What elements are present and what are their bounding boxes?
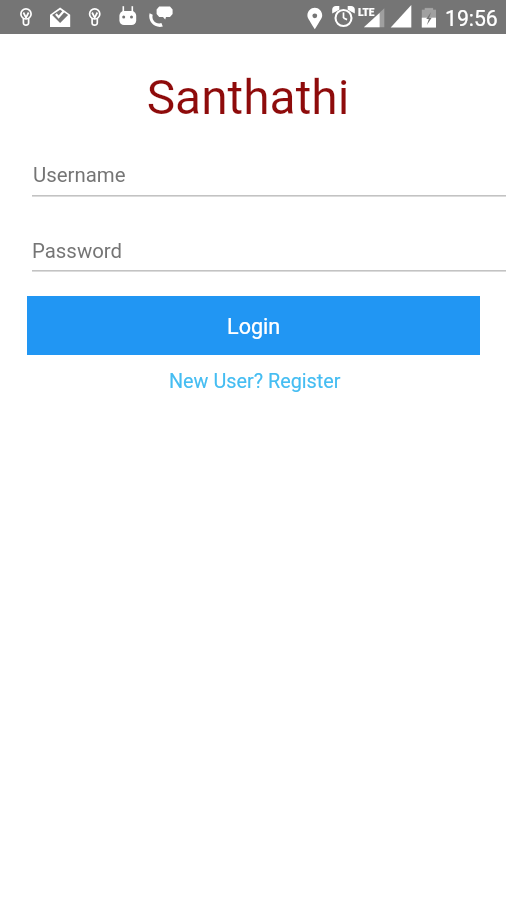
button[interactable]: New User? Register: [2, 370, 506, 393]
staticText: Login: [227, 314, 281, 339]
staticText: Santhathi: [0, 70, 501, 126]
button[interactable]: Password: [32, 239, 506, 263]
button[interactable]: Username: [32, 163, 506, 187]
staticText: Username: [33, 163, 126, 187]
staticText: New User? Register: [169, 370, 341, 393]
button[interactable]: Login: [27, 296, 480, 355]
staticText: LTE: [358, 5, 375, 19]
staticText: Password: [32, 239, 123, 263]
staticText: 19:56: [445, 6, 498, 31]
